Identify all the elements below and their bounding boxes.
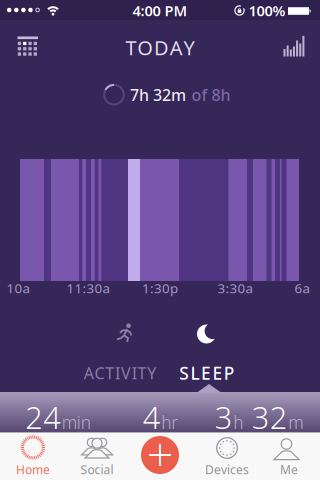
button[interactable]: Add xyxy=(136,432,184,480)
staticText: V xyxy=(121,362,131,384)
staticText: h xyxy=(233,411,243,434)
staticText: Home xyxy=(16,462,50,477)
staticText: 32 xyxy=(244,397,288,437)
staticText: O xyxy=(137,34,153,61)
staticText: 3:30a xyxy=(217,279,252,297)
staticText: 3 xyxy=(215,397,233,437)
staticText: 7h 32m xyxy=(130,84,186,105)
button[interactable]: Statistics xyxy=(274,26,314,66)
staticText: of 8h xyxy=(191,84,230,105)
staticText: 10a xyxy=(6,279,29,297)
staticText: I xyxy=(115,362,120,384)
staticText: 6a xyxy=(294,279,309,297)
staticText: 1:30p xyxy=(142,279,178,297)
staticText: 24 xyxy=(25,397,61,437)
staticText: T xyxy=(125,34,136,61)
staticText: L xyxy=(191,361,200,384)
staticText: T xyxy=(105,362,114,384)
button[interactable]: S xyxy=(147,316,267,382)
staticText: Me xyxy=(280,462,298,477)
staticText: E xyxy=(212,361,222,384)
button[interactable]: Calendar xyxy=(6,26,50,66)
staticText: 100% xyxy=(248,1,285,20)
button[interactable]: Devices xyxy=(194,432,256,480)
staticText: 11:30a xyxy=(66,279,109,297)
staticText: S xyxy=(179,361,189,384)
staticText: E xyxy=(201,361,211,384)
staticText: 4 xyxy=(143,397,161,437)
button[interactable]: Me xyxy=(258,432,320,480)
staticText: Y xyxy=(184,34,195,61)
staticText: A xyxy=(170,34,183,61)
staticText: m xyxy=(288,411,303,434)
staticText: C xyxy=(94,362,104,384)
staticText: Social xyxy=(80,462,113,477)
staticText: hr xyxy=(161,411,178,434)
button[interactable]: Social xyxy=(66,432,128,480)
staticText: Y xyxy=(147,362,156,384)
staticText: D xyxy=(154,34,169,61)
staticText: I xyxy=(132,362,137,384)
staticText: P xyxy=(224,361,235,384)
staticText: A xyxy=(84,362,94,384)
staticText: Devices xyxy=(205,462,249,477)
staticText: T xyxy=(137,362,146,384)
staticText: 4:00 PM xyxy=(132,1,187,20)
staticText: min xyxy=(62,411,91,434)
button[interactable]: A xyxy=(60,316,180,382)
button[interactable]: Home xyxy=(2,432,64,480)
